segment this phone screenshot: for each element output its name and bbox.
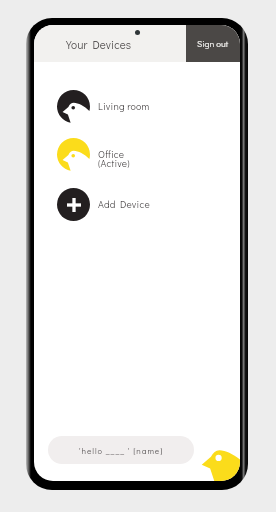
button[interactable]: Living room <box>34 86 240 126</box>
button[interactable]: Add Device <box>34 184 240 224</box>
staticText: (Active) <box>98 157 130 170</box>
staticText: Add Device <box>98 198 150 211</box>
other: Mascot <box>193 430 240 481</box>
button[interactable]: Sign out <box>186 25 240 62</box>
staticText: 'hello ____ ' [name] <box>79 445 164 456</box>
staticText: Sign out <box>197 38 229 50</box>
staticText: Living room <box>98 100 150 113</box>
staticText: Your Devices <box>66 37 132 52</box>
button[interactable]: Office <box>34 134 240 183</box>
staticText: Office <box>98 148 125 161</box>
button[interactable]: 'hello ____ ' [name] <box>48 436 194 464</box>
